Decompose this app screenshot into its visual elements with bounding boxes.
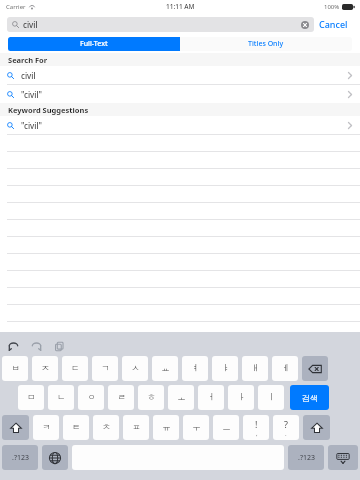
staticText: Titles Only — [248, 39, 284, 49]
button[interactable]: ㄴ — [48, 385, 74, 410]
staticText: ㅊ — [102, 422, 111, 433]
button[interactable]: Redo — [28, 338, 44, 354]
staticText: 검색 — [302, 393, 318, 403]
button[interactable]: civil — [7, 17, 314, 32]
staticText: ㅈ — [41, 363, 50, 374]
button[interactable]: .?123 — [2, 445, 38, 470]
staticText: Carrier — [6, 3, 26, 11]
staticText: ㅓ — [207, 392, 216, 403]
staticText: .?123 — [12, 453, 29, 463]
button[interactable]: ㄹ — [108, 385, 134, 410]
button[interactable]: "civil" — [0, 85, 360, 103]
button[interactable]: ㅊ — [93, 415, 119, 440]
staticText: ㅌ — [72, 422, 81, 433]
button[interactable]: ㅑ — [212, 356, 238, 381]
staticText: , — [256, 430, 258, 438]
button[interactable]: Full-Text — [8, 37, 180, 51]
staticText: ㅔ — [281, 363, 290, 374]
button[interactable]: ㅠ — [153, 415, 179, 440]
staticText: ㅋ — [42, 422, 51, 433]
button[interactable]: ㅓ — [198, 385, 224, 410]
button[interactable]: Shift — [2, 415, 29, 440]
staticText: ㅑ — [221, 363, 230, 374]
staticText: Cancel — [319, 18, 348, 30]
button[interactable]: ㅇ — [78, 385, 104, 410]
staticText: ㅍ — [132, 422, 141, 433]
button[interactable]: Change keyboard — [42, 445, 68, 470]
staticText: ㅅ — [131, 363, 140, 374]
staticText: ㅣ — [267, 392, 276, 403]
staticText: ㅡ — [222, 422, 231, 433]
staticText: .?123 — [298, 453, 315, 463]
button[interactable]: ㅣ — [258, 385, 284, 410]
button[interactable]: ㅂ — [2, 356, 28, 381]
staticText: ㅠ — [162, 422, 171, 433]
button[interactable]: ㅐ — [242, 356, 268, 381]
button[interactable]: ㅋ — [33, 415, 59, 440]
button[interactable]: ㅎ — [138, 385, 164, 410]
staticText: ㅇ — [87, 392, 96, 403]
staticText: ㅁ — [27, 392, 36, 403]
staticText: ㄱ — [101, 363, 110, 374]
button[interactable]: ㅌ — [63, 415, 89, 440]
button[interactable]: ? — [273, 415, 299, 440]
staticText: ㅕ — [191, 363, 200, 374]
staticText: ! — [255, 418, 258, 430]
button[interactable]: ㅈ — [32, 356, 58, 381]
button[interactable]: Shift — [303, 415, 330, 440]
button[interactable]: Clear text — [300, 20, 309, 29]
staticText: civil — [23, 19, 38, 30]
staticText: ㄹ — [117, 392, 126, 403]
staticText: . — [285, 430, 287, 438]
staticText: ㄴ — [57, 392, 66, 403]
staticText: Full-Text — [80, 39, 108, 49]
button[interactable]: Titles Only — [180, 37, 352, 51]
button[interactable]: civil — [0, 66, 360, 84]
staticText: civil — [21, 70, 36, 81]
button[interactable]: ㅏ — [228, 385, 254, 410]
button[interactable]: 검색 — [290, 385, 329, 410]
button[interactable]: ㅛ — [152, 356, 178, 381]
button[interactable]: Backspace — [302, 356, 328, 381]
staticText: "civil" — [21, 120, 43, 131]
button[interactable]: ㄷ — [62, 356, 88, 381]
button[interactable]: Paste — [51, 338, 67, 354]
staticText: ㅎ — [147, 392, 156, 403]
staticText: "civil" — [21, 89, 43, 100]
staticText: ㅜ — [192, 422, 201, 433]
button[interactable]: ㅡ — [213, 415, 239, 440]
staticText: ㄷ — [71, 363, 80, 374]
button[interactable]: ㅔ — [272, 356, 298, 381]
button[interactable]: ㅜ — [183, 415, 209, 440]
button[interactable]: ㅅ — [122, 356, 148, 381]
button[interactable]: Cancel — [314, 15, 353, 33]
staticText: ㅗ — [177, 392, 186, 403]
button[interactable]: ㅗ — [168, 385, 194, 410]
staticText: Keyword Suggestions — [8, 105, 89, 115]
button[interactable]: ㅁ — [18, 385, 44, 410]
button[interactable]: Hide keyboard — [328, 445, 358, 470]
staticText: 11:11 AM — [166, 2, 195, 11]
staticText: Search For — [8, 55, 48, 65]
button[interactable]: ㅕ — [182, 356, 208, 381]
staticText: ㅂ — [11, 363, 20, 374]
button[interactable]: ㅍ — [123, 415, 149, 440]
staticText: ㅛ — [161, 363, 170, 374]
button[interactable]: .?123 — [288, 445, 324, 470]
button[interactable]: ㄱ — [92, 356, 118, 381]
button[interactable]: Undo — [5, 338, 21, 354]
staticText: ? — [284, 418, 288, 430]
staticText: ㅏ — [237, 392, 246, 403]
button[interactable]: ! — [243, 415, 269, 440]
staticText: 100% — [324, 3, 340, 11]
staticText: ㅐ — [251, 363, 260, 374]
button[interactable]: "civil" — [0, 116, 360, 134]
